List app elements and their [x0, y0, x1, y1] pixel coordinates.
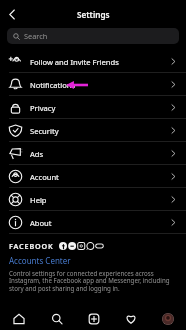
button[interactable]: About	[0, 211, 186, 234]
staticText: Accounts Center	[9, 255, 71, 266]
staticText: Security	[30, 126, 59, 136]
staticText: Help	[30, 195, 47, 205]
staticText: FACEBOOK	[9, 241, 54, 251]
button[interactable]: Search	[38, 307, 75, 330]
staticText: About	[30, 218, 52, 228]
button[interactable]: Home	[0, 307, 38, 330]
button[interactable]: Back	[0, 2, 24, 26]
button[interactable]: Notifications	[0, 73, 186, 96]
button[interactable]: Ads	[0, 142, 186, 165]
staticText: Settings	[77, 9, 110, 20]
staticText: Notifications	[30, 80, 76, 90]
staticText: Account	[30, 172, 59, 182]
button[interactable]: Search	[7, 28, 179, 44]
button[interactable]: Profile	[149, 307, 186, 330]
button[interactable]: Privacy	[0, 96, 186, 119]
button[interactable]: Accounts Center	[9, 255, 71, 266]
button[interactable]: Activity	[112, 307, 149, 330]
button[interactable]: Create	[75, 307, 112, 330]
button[interactable]: Account	[0, 165, 186, 188]
button[interactable]: Help	[0, 188, 186, 211]
button[interactable]: Security	[0, 119, 186, 142]
staticText: Search	[24, 31, 48, 41]
staticText: Privacy	[30, 103, 56, 113]
staticText: Control settings for connected experienc…	[9, 269, 177, 293]
button[interactable]: Follow and Invite Friends	[0, 50, 186, 73]
staticText: Ads	[30, 149, 44, 159]
staticText: Follow and Invite Friends	[30, 57, 119, 67]
